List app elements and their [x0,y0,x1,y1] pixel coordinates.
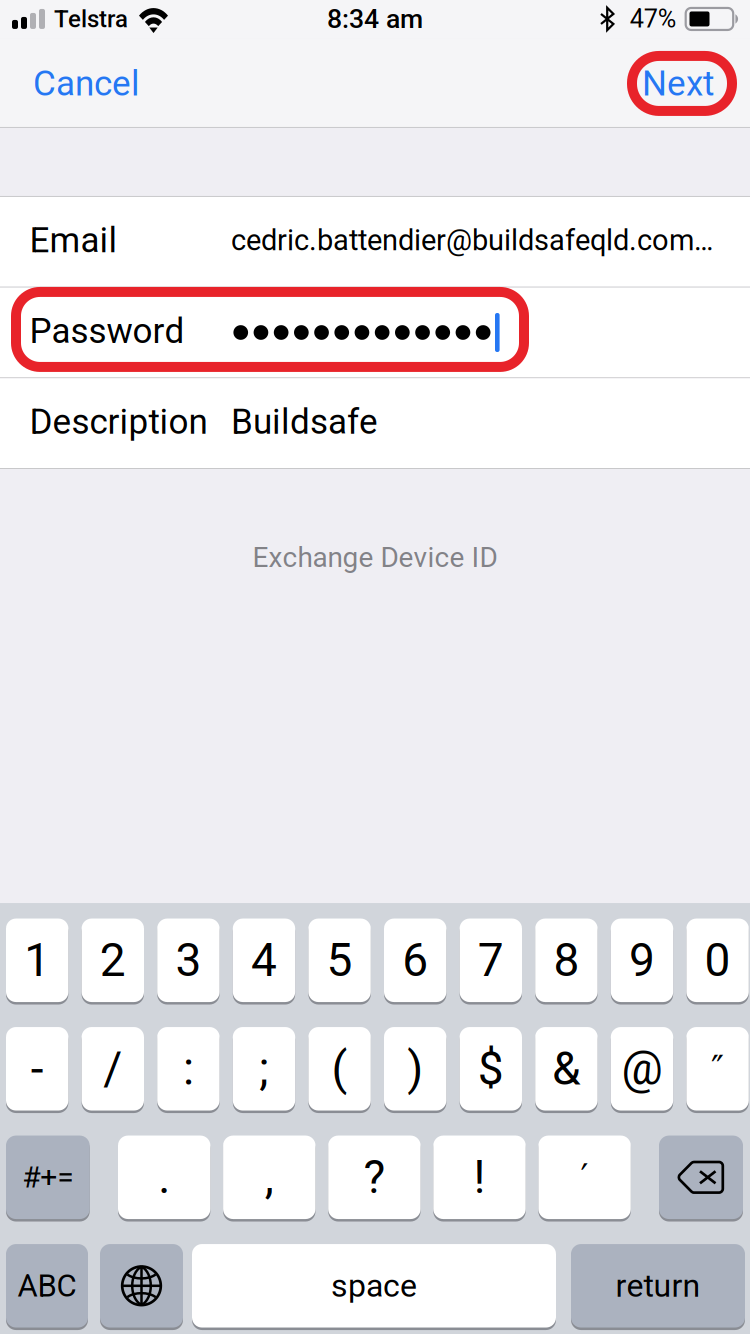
button[interactable]: ABC [6,1244,88,1330]
staticText: @ [621,1042,662,1096]
staticText: 0 [705,933,731,987]
staticText: Password [29,310,184,351]
button[interactable]: $ [460,1027,522,1113]
button[interactable]: 7 [460,918,522,1004]
button[interactable]: space [192,1244,556,1330]
button[interactable]: 4 [233,918,295,1004]
button[interactable]: & [535,1027,598,1113]
staticText: ; [259,1042,269,1096]
staticText: . [158,1150,170,1204]
staticText: Telstra [54,5,128,33]
staticText: 9 [629,933,655,987]
staticText: 4 [251,933,277,987]
button[interactable]: 3 [157,918,220,1004]
button[interactable]: @ [611,1027,673,1113]
staticText: 5 [327,933,353,987]
button[interactable]: Cancel [0,49,156,118]
staticText: ABC [17,1268,76,1304]
staticText: ″ [711,1049,724,1089]
button[interactable]: 1 [6,918,68,1004]
staticText: #+= [22,1160,73,1195]
staticText: ! [473,1150,485,1204]
staticText: / [103,1042,122,1096]
button[interactable]: Delete [659,1135,743,1221]
button[interactable]: . [118,1135,210,1221]
button[interactable]: ? [328,1135,421,1221]
staticText: 47% [630,4,677,34]
button[interactable]: Next [626,49,750,118]
button[interactable]: ! [433,1135,526,1221]
staticText: ′ [581,1157,589,1197]
staticText: ) [407,1042,423,1096]
staticText: cedric.battendier@buildsafeqld.com… [231,223,713,257]
staticText: , [265,1150,274,1204]
staticText: Email [29,220,117,261]
button[interactable]: 9 [611,918,673,1004]
staticText: Description [29,401,207,442]
staticText: & [552,1042,581,1096]
button[interactable]: #+= [6,1135,90,1221]
button[interactable]: , [223,1135,315,1221]
staticText: ( [332,1042,348,1096]
button[interactable]: return [571,1244,745,1330]
button[interactable]: 8 [535,918,598,1004]
staticText: 7 [478,933,504,987]
staticText: 1 [24,933,50,987]
staticText: - [31,1042,44,1096]
button[interactable]: ′ [538,1135,631,1221]
staticText: Buildsafe [231,401,378,442]
button[interactable]: ) [384,1027,446,1113]
staticText: 8 [553,933,579,987]
staticText: 2 [100,933,126,987]
staticText: Cancel [33,63,140,104]
button[interactable]: ″ [686,1027,749,1113]
button[interactable]: ; [233,1027,295,1113]
button[interactable]: 6 [384,918,446,1004]
staticText: Next [642,63,714,104]
button[interactable]: ( [308,1027,371,1113]
button[interactable]: - [6,1027,68,1113]
staticText: 8:34 am [327,3,423,35]
staticText: ? [363,1150,385,1204]
staticText: 3 [175,933,201,987]
staticText: 6 [402,933,428,987]
button[interactable]: / [82,1027,144,1113]
staticText: $ [478,1042,504,1096]
button[interactable]: 5 [308,918,371,1004]
staticText: space [331,1267,417,1304]
staticText: : [183,1042,194,1096]
button[interactable]: Next keyboard [100,1244,183,1330]
button[interactable]: : [157,1027,220,1113]
staticText: return [615,1267,700,1304]
button[interactable]: 0 [686,918,749,1004]
staticText: Exchange Device ID [252,541,497,574]
button[interactable]: 2 [82,918,144,1004]
